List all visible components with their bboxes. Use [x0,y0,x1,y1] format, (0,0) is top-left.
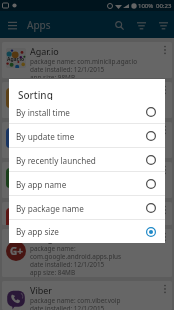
button[interactable]: By app size [9,220,165,243]
staticText: Sorting [18,88,53,100]
staticText: Calendar [30,125,68,137]
staticText: package name: com.miniclip.agar.io date … [30,57,138,78]
staticText: Google+ [30,232,66,244]
button[interactable]: G+ [2,229,172,277]
staticText: package name: com.viber.voip date instal… [30,296,121,310]
button[interactable]: More options [159,85,170,118]
staticText: 100% [138,2,154,10]
button[interactable]: More options [159,45,170,78]
button[interactable]: By recently launched [9,148,165,172]
button[interactable]: By app name [9,172,165,196]
staticText: Agar.io [30,45,59,57]
button[interactable]: By update time [9,124,165,148]
staticText: package name: com.google.android.gm date… [30,217,150,225]
button[interactable]: Viber [2,281,172,310]
staticText: Viber [30,284,53,296]
staticText: By install time [16,107,70,118]
staticText: package name: com.amazon.mshop.android d… [30,97,159,118]
staticText: package name: com.google.android.apps.pl… [30,244,159,277]
staticText: By recently launched [16,155,96,166]
button[interactable]: Menu [0,13,24,37]
staticText: G+ [10,244,23,258]
staticText: 00:23 [156,2,172,10]
staticText: By app size [16,226,59,237]
button[interactable]: More options [159,125,170,158]
staticText: By update time [16,131,75,142]
button[interactable]: More options [159,232,170,277]
button[interactable]: Calendar [2,122,172,158]
button[interactable]: By install time [9,100,165,124]
button[interactable]: Agar.io [2,42,172,78]
staticText: By package name [16,203,84,214]
button[interactable]: Chrome [2,162,172,198]
staticText: package name: com.android.chrome date in… [30,177,140,198]
button[interactable]: Amazon [2,82,172,118]
staticText: Chrome [30,165,64,177]
staticText: Amazon [30,85,65,97]
staticText: Gmail [30,205,55,217]
button[interactable]: More options [159,205,170,225]
staticText: Apps [27,18,51,32]
button[interactable]: By package name [9,196,165,220]
button[interactable]: Sort order [130,14,152,36]
button[interactable]: Filter [152,14,174,36]
staticText: package name: com.google.android.calenda… [30,137,159,158]
staticText: By app name [16,179,67,190]
button[interactable]: More options [159,165,170,198]
button[interactable]: More options [159,284,170,310]
staticText: Agar.io [7,56,25,63]
button[interactable]: Gmail [2,202,172,225]
button[interactable]: Search [108,14,130,36]
